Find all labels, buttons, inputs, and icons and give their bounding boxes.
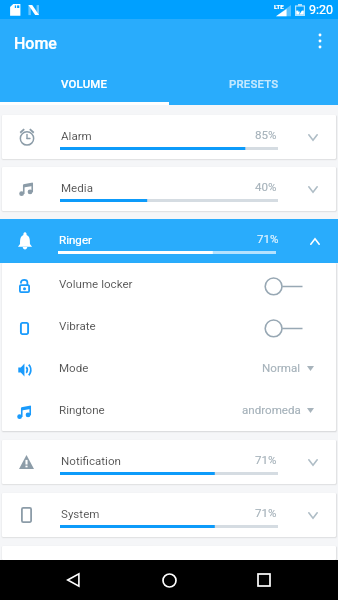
button[interactable]: VOLUME	[0, 66, 169, 105]
button[interactable]: Media	[2, 167, 336, 211]
staticText: Home	[14, 34, 57, 53]
staticText: Notification	[61, 454, 121, 468]
staticText: VOLUME	[61, 77, 108, 90]
staticText: Volume locker	[59, 277, 258, 291]
staticText: Media	[61, 181, 93, 195]
staticText: 71%	[255, 506, 277, 520]
staticText: 40%	[255, 180, 277, 194]
button[interactable]: Recents	[244, 560, 284, 600]
button[interactable]: System	[2, 493, 336, 537]
staticText: 71%	[257, 232, 279, 246]
staticText: 71%	[255, 453, 277, 467]
button[interactable]: Expand	[289, 167, 336, 211]
staticText: andromeda	[242, 403, 301, 417]
staticText: Ringer	[59, 233, 92, 247]
staticText: Vibrate	[59, 319, 258, 333]
staticText: Normal	[262, 361, 301, 375]
button[interactable]: Expand	[289, 440, 336, 484]
button[interactable]: Expand	[289, 115, 336, 159]
staticText: 9:20	[309, 2, 334, 17]
button[interactable]: Expand	[289, 493, 336, 537]
button[interactable]: Collapse	[291, 219, 338, 263]
staticText: Ringtone	[59, 403, 242, 417]
staticText: 85%	[255, 128, 277, 142]
staticText: LTE	[274, 3, 284, 10]
staticText: Mode	[59, 361, 262, 375]
staticText: PRESETS	[229, 77, 279, 90]
button[interactable]: Alarm	[2, 115, 336, 159]
button[interactable]: PRESETS	[169, 66, 338, 105]
button[interactable]: Mode	[2, 347, 336, 389]
button[interactable]: Notification	[2, 440, 336, 484]
button[interactable]: Back	[54, 560, 94, 600]
button[interactable]: Vibrate	[2, 305, 336, 347]
button[interactable]: Volume locker	[2, 263, 336, 305]
button[interactable]: Ringer	[0, 219, 338, 263]
button[interactable]: Ringtone	[2, 389, 336, 431]
staticText: System	[61, 507, 100, 521]
button[interactable]: More options	[302, 19, 338, 63]
button[interactable]: Home	[149, 560, 189, 600]
staticText: Alarm	[61, 129, 92, 143]
